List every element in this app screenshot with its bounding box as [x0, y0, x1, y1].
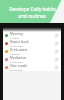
staticText: 8 glasses	[10, 52, 21, 55]
other: Progress	[54, 41, 59, 46]
other: Progress	[54, 57, 59, 62]
staticText: Meditation	[10, 56, 27, 60]
button[interactable]: Morning	[3, 31, 61, 39]
button[interactable]: Take a walk	[3, 63, 61, 71]
other: Progress	[54, 33, 59, 38]
staticText: 20 minutes	[10, 68, 23, 71]
staticText: 30 minutes	[10, 44, 23, 47]
button[interactable]: Read a book	[3, 39, 61, 47]
button[interactable]: Drink water	[3, 47, 61, 55]
button[interactable]: Meditation	[3, 55, 61, 63]
staticText: 10 minutes	[10, 60, 23, 63]
other: Progress	[54, 49, 59, 54]
staticText: 6 habits	[10, 36, 19, 39]
staticText: Morning	[10, 32, 23, 36]
staticText: Take a walk	[10, 64, 28, 68]
staticText: Develope Daily habits	[9, 6, 56, 12]
staticText: and routines	[18, 13, 46, 19]
staticText: Drink water	[10, 48, 28, 52]
staticText: Read a book	[10, 40, 29, 44]
other: Progress	[54, 65, 59, 70]
